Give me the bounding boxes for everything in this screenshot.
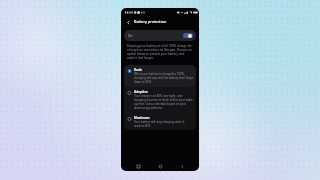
staticText: Maximum xyxy=(134,116,150,120)
staticText: Adaptive xyxy=(134,90,148,94)
staticText: Your battery will stop charging when it … xyxy=(134,120,194,128)
button[interactable]: Home xyxy=(155,161,165,171)
staticText: On xyxy=(128,34,133,38)
staticText: Battery protection xyxy=(134,19,167,24)
button[interactable]: On xyxy=(124,30,196,41)
staticText: When your battery is charged to 100%, ch… xyxy=(134,72,194,84)
staticText: Basic xyxy=(134,68,142,72)
button[interactable]: Back xyxy=(124,18,132,26)
button[interactable]: Maximum xyxy=(124,113,196,130)
button[interactable]: Adaptive xyxy=(124,87,196,113)
staticText: Your charge is at 80% overnight, and cha… xyxy=(134,94,194,110)
button[interactable]: Back xyxy=(177,161,187,171)
button[interactable]: Recents xyxy=(133,161,143,171)
button[interactable]: Basic xyxy=(124,65,196,87)
staticText: Keeping your battery at a full 100% char… xyxy=(127,44,192,60)
